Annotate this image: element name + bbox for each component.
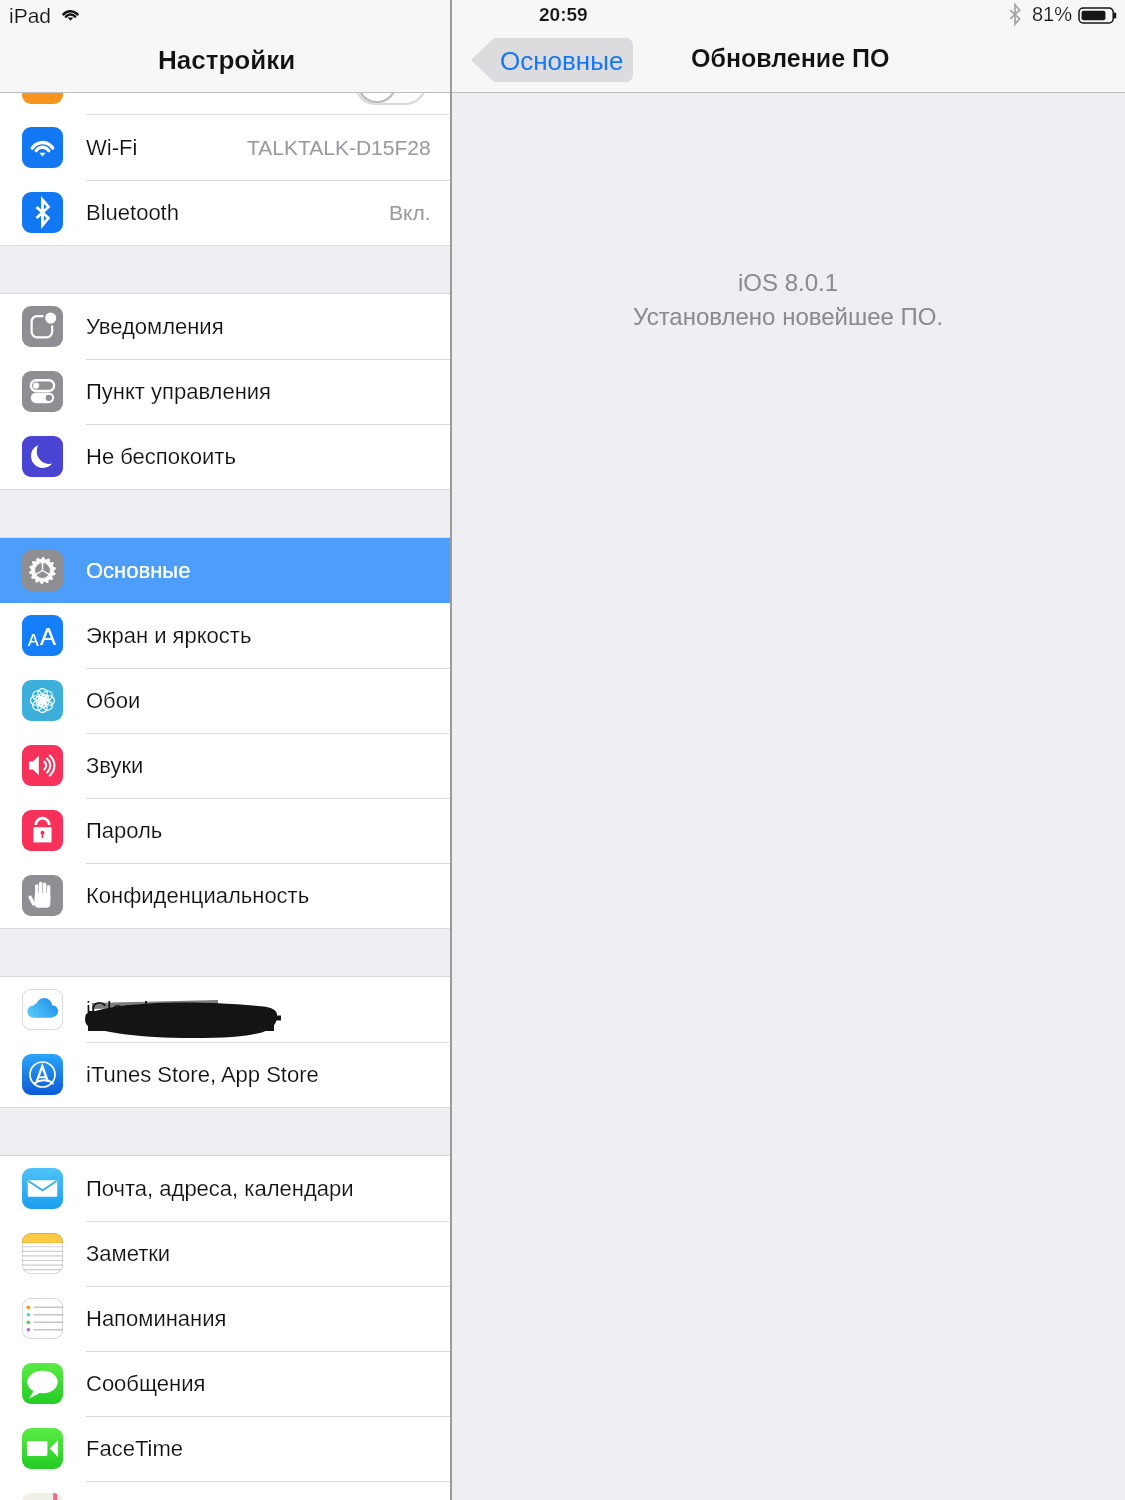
button[interactable]: Напоминания — [0, 1286, 450, 1351]
staticText: Настройки — [158, 45, 296, 74]
staticText: Обои — [86, 688, 141, 713]
staticText: Напоминания — [86, 1306, 227, 1331]
button[interactable]: Сообщения — [0, 1351, 450, 1416]
staticText: TALKTALK-D15F28 — [247, 136, 431, 159]
button[interactable]: Пароль — [0, 798, 450, 863]
button[interactable]: iCloud — [0, 977, 450, 1042]
button[interactable]: Bluetooth — [0, 180, 450, 245]
button[interactable]: Конфиденциальность — [0, 863, 450, 928]
button[interactable]: Основные — [471, 38, 633, 82]
button[interactable]: Заметки — [0, 1221, 450, 1286]
button[interactable]: iTunes Store, App Store — [0, 1042, 450, 1107]
staticText: iCloud — [86, 997, 149, 1022]
staticText: Вкл. — [389, 201, 431, 224]
staticText: Звуки — [86, 753, 144, 778]
staticText: iTunes Store, App Store — [86, 1062, 319, 1087]
staticText: iOS 8.0.1 — [738, 269, 839, 296]
staticText: Не беспокоить — [86, 444, 236, 469]
staticText: Bluetooth — [86, 200, 179, 225]
staticText: Wi-Fi — [86, 135, 138, 160]
button[interactable]: Обои — [0, 668, 450, 733]
button[interactable]: Основные — [0, 538, 450, 603]
button[interactable]: Звуки — [0, 733, 450, 798]
button[interactable]: Уведомления — [0, 294, 450, 359]
staticText: Почта, адреса, календари — [86, 1176, 354, 1201]
button[interactable]: Не беспокоить — [0, 424, 450, 489]
button[interactable]: Почта, адреса, календари — [0, 1156, 450, 1221]
staticText: FaceTime — [86, 1436, 183, 1461]
staticText: Заметки — [86, 1241, 171, 1266]
staticText: A — [28, 632, 39, 650]
staticText: Установлено новейшее ПО. — [633, 303, 944, 330]
button[interactable]: Wi-Fi — [0, 115, 450, 180]
staticText: Экран и яркость — [86, 623, 252, 648]
staticText: Конфиденциальность — [86, 883, 310, 908]
button[interactable]: A — [0, 603, 450, 668]
staticText: A — [40, 623, 57, 650]
staticText: Уведомления — [86, 314, 224, 339]
staticText: Пароль — [86, 818, 163, 843]
button[interactable]: Карты — [0, 1481, 450, 1500]
staticText: iPad — [9, 4, 52, 27]
staticText: Пункт управления — [86, 379, 272, 404]
staticText: Обновление ПО — [691, 44, 890, 72]
staticText: Основные — [86, 558, 191, 583]
button[interactable]: FaceTime — [0, 1416, 450, 1481]
staticText: Основные — [500, 46, 624, 75]
staticText: 81% — [1032, 3, 1073, 25]
button[interactable]: Пункт управления — [0, 359, 450, 424]
staticText: Сообщения — [86, 1371, 206, 1396]
button[interactable]: Авиарежим — [0, 0, 450, 115]
staticText: 20:59 — [539, 4, 588, 25]
